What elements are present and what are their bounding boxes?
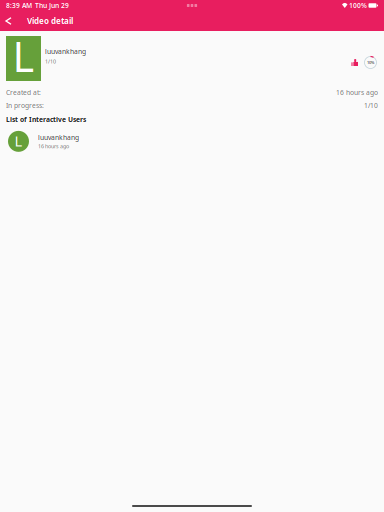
staticText: In progress:: [6, 101, 44, 110]
staticText: luuvankhang: [45, 47, 86, 56]
staticText: List of Interactive Users: [6, 115, 86, 124]
button[interactable]: L: [0, 124, 384, 156]
staticText: 16 hours ago: [336, 88, 378, 97]
staticText: Created at:: [6, 88, 41, 97]
button[interactable]: Like: [347, 55, 362, 70]
staticText: 16 hours ago: [38, 143, 69, 150]
staticText: luuvankhang: [38, 133, 79, 142]
staticText: 1/10: [364, 101, 378, 110]
staticText: 10%: [367, 60, 374, 65]
staticText: 100%: [349, 1, 367, 10]
staticText: Thu Jun 29: [35, 1, 69, 10]
staticText: L: [14, 131, 22, 151]
staticText: 8:39 AM: [6, 1, 32, 10]
staticText: 1/10: [45, 58, 56, 65]
staticText: L: [12, 29, 34, 83]
staticText: Video detail: [27, 16, 73, 26]
button[interactable]: Back: [0, 14, 16, 28]
